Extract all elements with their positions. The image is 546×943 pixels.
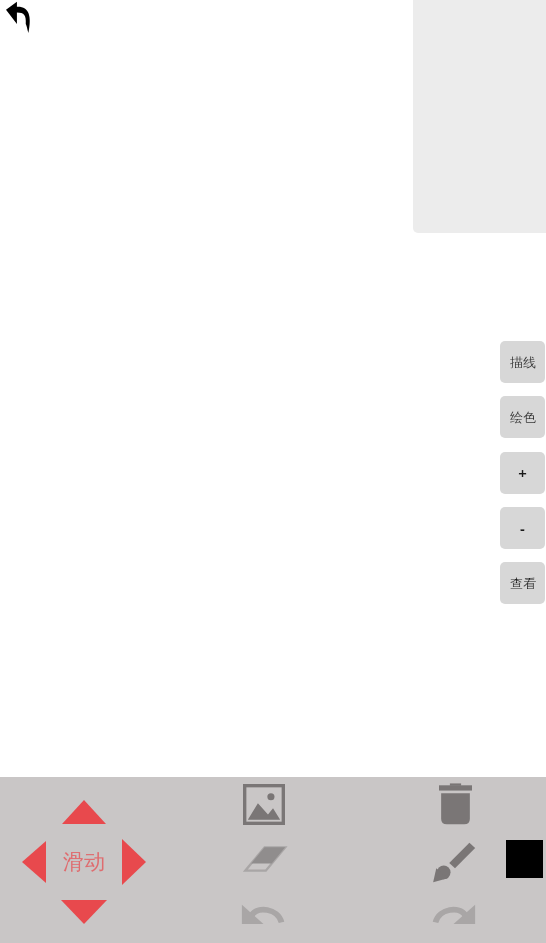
button[interactable]: Redo (431, 903, 476, 925)
button[interactable]: Undo (241, 903, 286, 925)
button[interactable]: Delete (439, 783, 472, 825)
button[interactable]: 绘色 (500, 396, 545, 438)
staticText: 绘色 (510, 409, 536, 425)
staticText: + (518, 463, 527, 483)
button[interactable]: Image (243, 784, 285, 825)
button[interactable]: Eraser (244, 846, 286, 872)
button[interactable]: Pan (18, 800, 150, 924)
staticText: 描线 (510, 354, 536, 370)
button[interactable]: 查看 (500, 562, 545, 604)
staticText: 滑动 (63, 849, 105, 875)
button[interactable]: Back (6, 1, 32, 33)
button[interactable]: 描线 (500, 341, 545, 383)
staticText: - (520, 518, 525, 538)
staticText: 查看 (510, 575, 536, 591)
button[interactable]: + (500, 452, 545, 494)
button[interactable]: Brush (431, 840, 479, 884)
button[interactable]: - (500, 507, 545, 549)
